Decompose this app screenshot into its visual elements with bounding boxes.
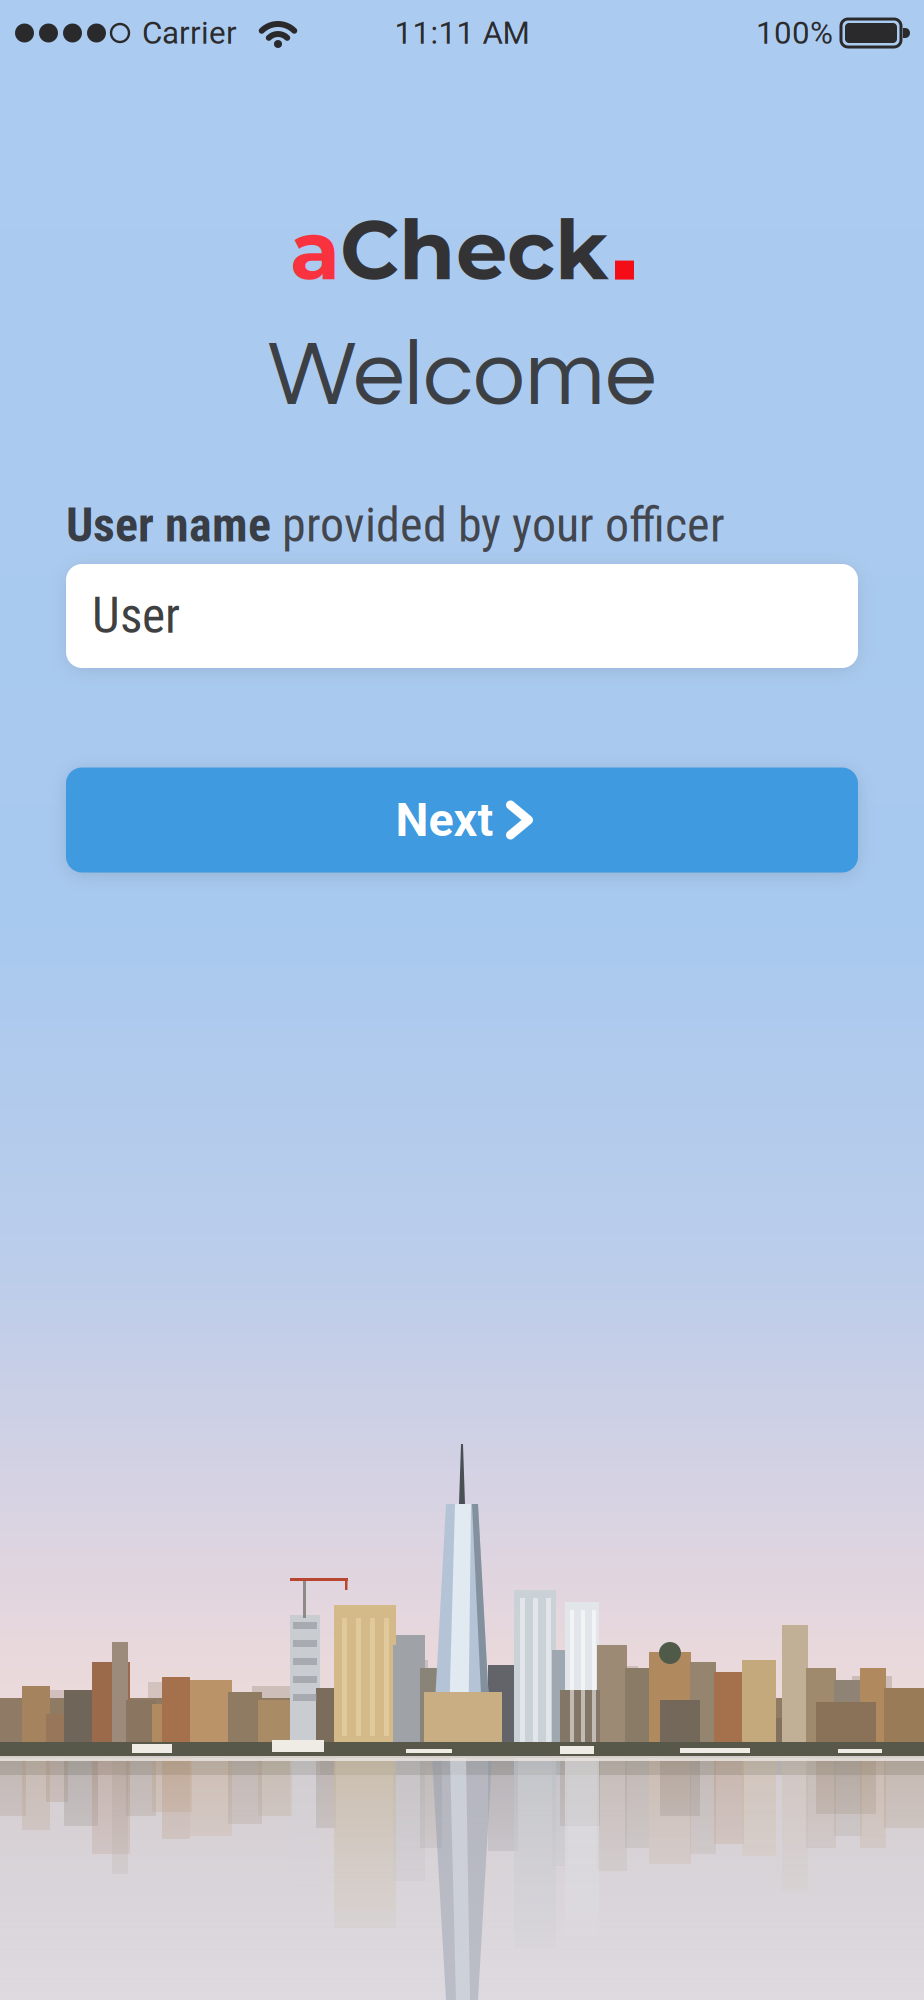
staticText: Check — [340, 200, 608, 299]
button[interactable]: User — [66, 564, 858, 668]
staticText: a — [290, 200, 340, 299]
button[interactable]: Next — [66, 767, 858, 872]
staticText: Next — [395, 793, 493, 847]
staticText: User — [92, 587, 180, 645]
staticText: provided by your officer — [271, 497, 725, 553]
staticText: Welcome — [268, 329, 656, 423]
staticText: User name — [66, 497, 271, 553]
staticText: Carrier — [142, 15, 237, 51]
staticText: 100% — [756, 15, 833, 51]
staticText: 11:11 AM — [394, 15, 529, 51]
